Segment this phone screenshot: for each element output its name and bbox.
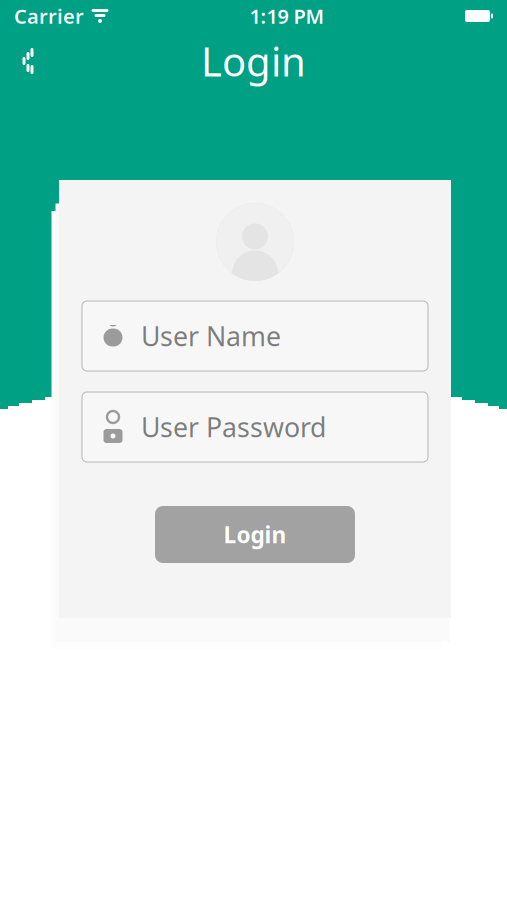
button[interactable]: Back [0, 32, 56, 90]
button[interactable]: Login [155, 506, 355, 563]
button[interactable]: User Name [82, 301, 428, 371]
staticText: Login [223, 519, 286, 549]
staticText: 1:19 PM [249, 3, 324, 29]
staticText: Carrier [14, 3, 84, 29]
staticText: User Password [141, 409, 326, 445]
button[interactable]: User Password [82, 392, 428, 462]
staticText: Login [201, 34, 306, 87]
staticText: User Name [141, 318, 281, 354]
